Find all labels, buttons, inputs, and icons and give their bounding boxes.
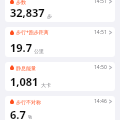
staticText: 步 <box>47 13 52 19</box>
staticText: 14:46 <box>94 98 107 105</box>
button[interactable]: 步行+跑步距离 <box>5 27 115 57</box>
staticText: % <box>28 114 33 120</box>
button[interactable]: 步数 <box>5 0 115 22</box>
staticText: 14:51 <box>94 0 107 5</box>
staticText: 1,081 <box>10 74 39 89</box>
staticText: 静息能量 <box>16 65 36 71</box>
staticText: 大卡 <box>41 82 51 88</box>
staticText: 14:51 <box>94 29 107 36</box>
button[interactable]: 静息能量 <box>5 62 115 91</box>
staticText: 14:50 <box>94 64 107 71</box>
staticText: 19.7 <box>10 40 32 55</box>
staticText: 6.7 <box>10 107 26 120</box>
staticText: 步数 <box>16 0 26 5</box>
staticText: 步行+跑步距离 <box>16 29 49 36</box>
staticText: 公里 <box>34 48 44 54</box>
button[interactable]: 步行不对称 <box>5 96 115 120</box>
staticText: 步行不对称 <box>16 99 41 105</box>
staticText: 32,837 <box>10 5 45 20</box>
